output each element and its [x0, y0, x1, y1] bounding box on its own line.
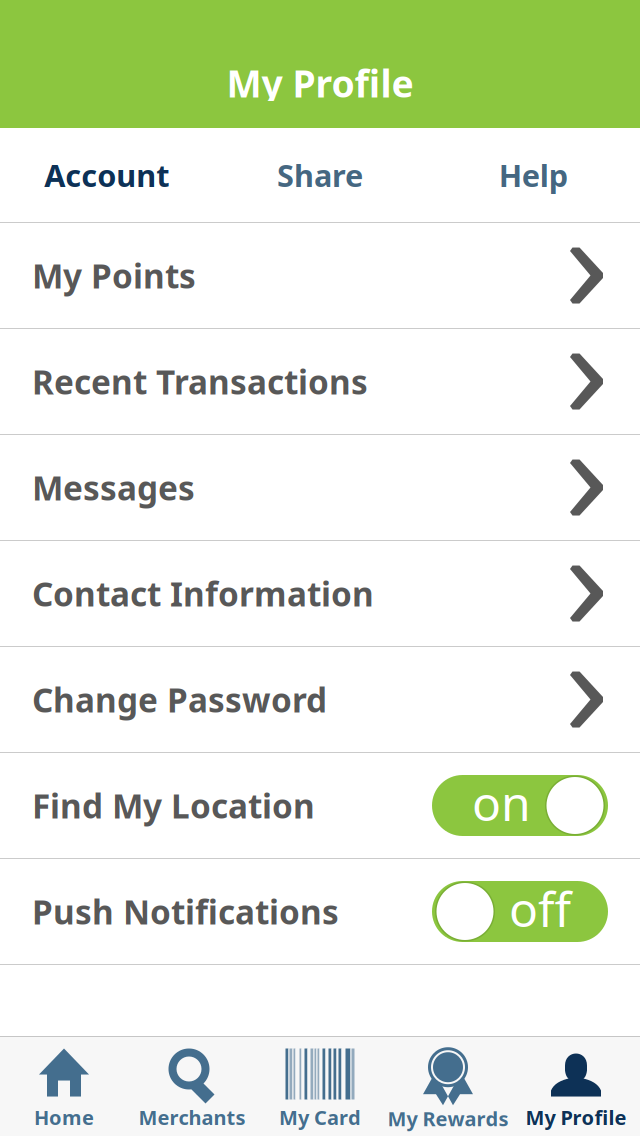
button[interactable]: Share — [213, 128, 427, 222]
button[interactable]: Help — [427, 128, 640, 222]
button[interactable]: Recent Transactions — [0, 329, 640, 434]
staticText: My Profile — [226, 58, 413, 108]
staticText: My Rewards — [387, 1105, 508, 1132]
staticText: Change Password — [32, 677, 327, 722]
button[interactable]: My Profile — [512, 1036, 640, 1136]
staticText: Home — [34, 1104, 94, 1130]
button[interactable]: Push Notifications — [0, 859, 640, 964]
button[interactable]: My Points — [0, 223, 640, 328]
staticText: off — [509, 877, 571, 940]
button[interactable]: Home — [0, 1036, 128, 1136]
staticText: My Card — [279, 1104, 361, 1130]
staticText: Find My Location — [32, 783, 315, 828]
button[interactable]: Merchants — [128, 1036, 256, 1136]
button[interactable]: My Rewards — [384, 1036, 512, 1136]
staticText: Contact Information — [32, 571, 374, 616]
staticText: Recent Transactions — [32, 359, 368, 404]
button[interactable]: Contact Information — [0, 541, 640, 646]
staticText: My Points — [32, 253, 196, 298]
staticText: Account — [44, 155, 169, 195]
button[interactable]: Messages — [0, 435, 640, 540]
staticText: Merchants — [138, 1104, 245, 1130]
staticText: Help — [499, 155, 568, 195]
staticText: My Profile — [525, 1104, 626, 1130]
staticText: Share — [277, 155, 363, 195]
button[interactable]: Find My Location — [0, 753, 640, 858]
staticText: on — [472, 771, 531, 834]
button[interactable]: Account — [0, 128, 213, 222]
staticText: Push Notifications — [32, 889, 339, 934]
staticText: Messages — [32, 465, 195, 510]
button[interactable]: Change Password — [0, 647, 640, 752]
button[interactable]: My Card — [256, 1036, 384, 1136]
